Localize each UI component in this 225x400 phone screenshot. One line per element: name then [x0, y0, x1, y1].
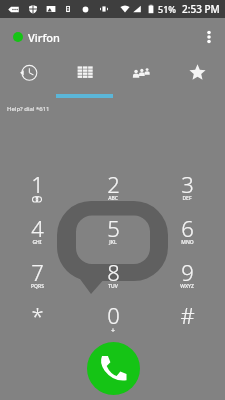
button[interactable]: Key 2	[76, 165, 150, 208]
button[interactable]: Dialpad	[57, 56, 113, 99]
staticText: 9	[181, 257, 194, 287]
staticText: Help? dial *611	[7, 105, 50, 113]
button[interactable]: Key 1	[0, 165, 74, 208]
staticText: 2:53 PM	[182, 2, 220, 16]
button[interactable]: Key 6	[150, 209, 224, 252]
button[interactable]: Key 3	[150, 165, 224, 208]
staticText: ABC	[108, 195, 118, 202]
button[interactable]: Favorites	[169, 56, 225, 99]
staticText: 7	[31, 257, 44, 287]
staticText: +	[111, 326, 116, 336]
button[interactable]: More options	[197, 18, 225, 56]
staticText: TUV	[108, 283, 118, 290]
staticText: 1	[31, 169, 44, 199]
staticText: 0	[107, 300, 120, 330]
staticText: Virfon	[28, 30, 60, 45]
staticText: 8	[107, 257, 120, 287]
button[interactable]: Key 8	[76, 253, 150, 296]
button[interactable]: Recent calls	[0, 56, 57, 99]
button[interactable]: Key #	[150, 296, 224, 339]
button[interactable]: Key 7	[0, 253, 74, 296]
staticText: GHI	[32, 239, 42, 246]
staticText: 5	[107, 213, 120, 243]
button[interactable]: Call	[87, 342, 140, 395]
staticText: PQRS	[31, 283, 44, 290]
button[interactable]: Key *	[0, 296, 74, 339]
staticText: JKL	[109, 239, 117, 246]
button[interactable]: Key 0	[76, 296, 150, 339]
staticText: DEF	[182, 195, 192, 202]
staticText: MNO	[181, 239, 194, 246]
staticText: 6	[181, 213, 194, 243]
button[interactable]: Contacts	[113, 56, 169, 99]
button[interactable]: Key 9	[150, 253, 224, 296]
staticText: *	[31, 300, 44, 330]
staticText: 2	[107, 169, 120, 199]
button[interactable]: Key 5	[76, 209, 150, 252]
staticText: #	[180, 300, 195, 330]
staticText: 4	[31, 213, 44, 243]
staticText: 51%	[158, 3, 176, 15]
staticText: 3	[181, 169, 194, 199]
staticText: WXYZ	[180, 283, 194, 290]
button[interactable]: Key 4	[0, 209, 74, 252]
